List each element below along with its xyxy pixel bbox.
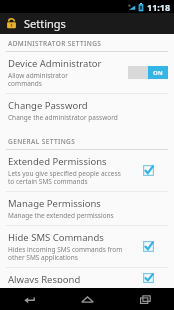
- button[interactable]: Device administrator toggle, on: [128, 66, 168, 79]
- staticText: 11:18: [147, 1, 171, 13]
- staticText: Always Respond: [8, 273, 81, 283]
- button[interactable]: Checkbox, checked: [142, 240, 155, 253]
- staticText: GENERAL SETTINGS: [8, 137, 76, 146]
- staticText: Hides incoming SMS commands from other S…: [8, 245, 123, 262]
- staticText: ADMINISTRATOR SETTINGS: [8, 39, 102, 48]
- staticText: Hide SMS Commands: [8, 231, 104, 244]
- button[interactable]: Settings: [0, 13, 174, 34]
- staticText: Allow administrator commands: [8, 71, 68, 88]
- button[interactable]: Home: [58, 288, 116, 310]
- button[interactable]: Device Administrator: [0, 52, 174, 93]
- button[interactable]: Change Password: [0, 94, 174, 127]
- staticText: Extended Permissions: [8, 155, 107, 168]
- staticText: Change the administrator password: [8, 113, 118, 122]
- button[interactable]: Always Respond: [0, 268, 174, 288]
- button[interactable]: Extended Permissions: [0, 150, 174, 191]
- button[interactable]: Recent apps: [116, 288, 174, 310]
- staticText: Device Administrator: [8, 57, 102, 70]
- button[interactable]: Back: [0, 288, 58, 310]
- button[interactable]: Manage Permissions: [0, 192, 174, 225]
- button[interactable]: Hide SMS Commands: [0, 226, 174, 267]
- staticText: Lets you give specified people access to…: [8, 169, 121, 186]
- staticText: Change Password: [8, 99, 88, 112]
- button[interactable]: Checkbox, checked: [142, 273, 155, 283]
- staticText: Manage the extended permissions: [8, 211, 114, 220]
- staticText: Manage Permissions: [8, 197, 101, 210]
- staticText: Settings: [24, 16, 66, 31]
- staticText: ON: [153, 69, 163, 77]
- button[interactable]: Checkbox, checked: [142, 164, 155, 177]
